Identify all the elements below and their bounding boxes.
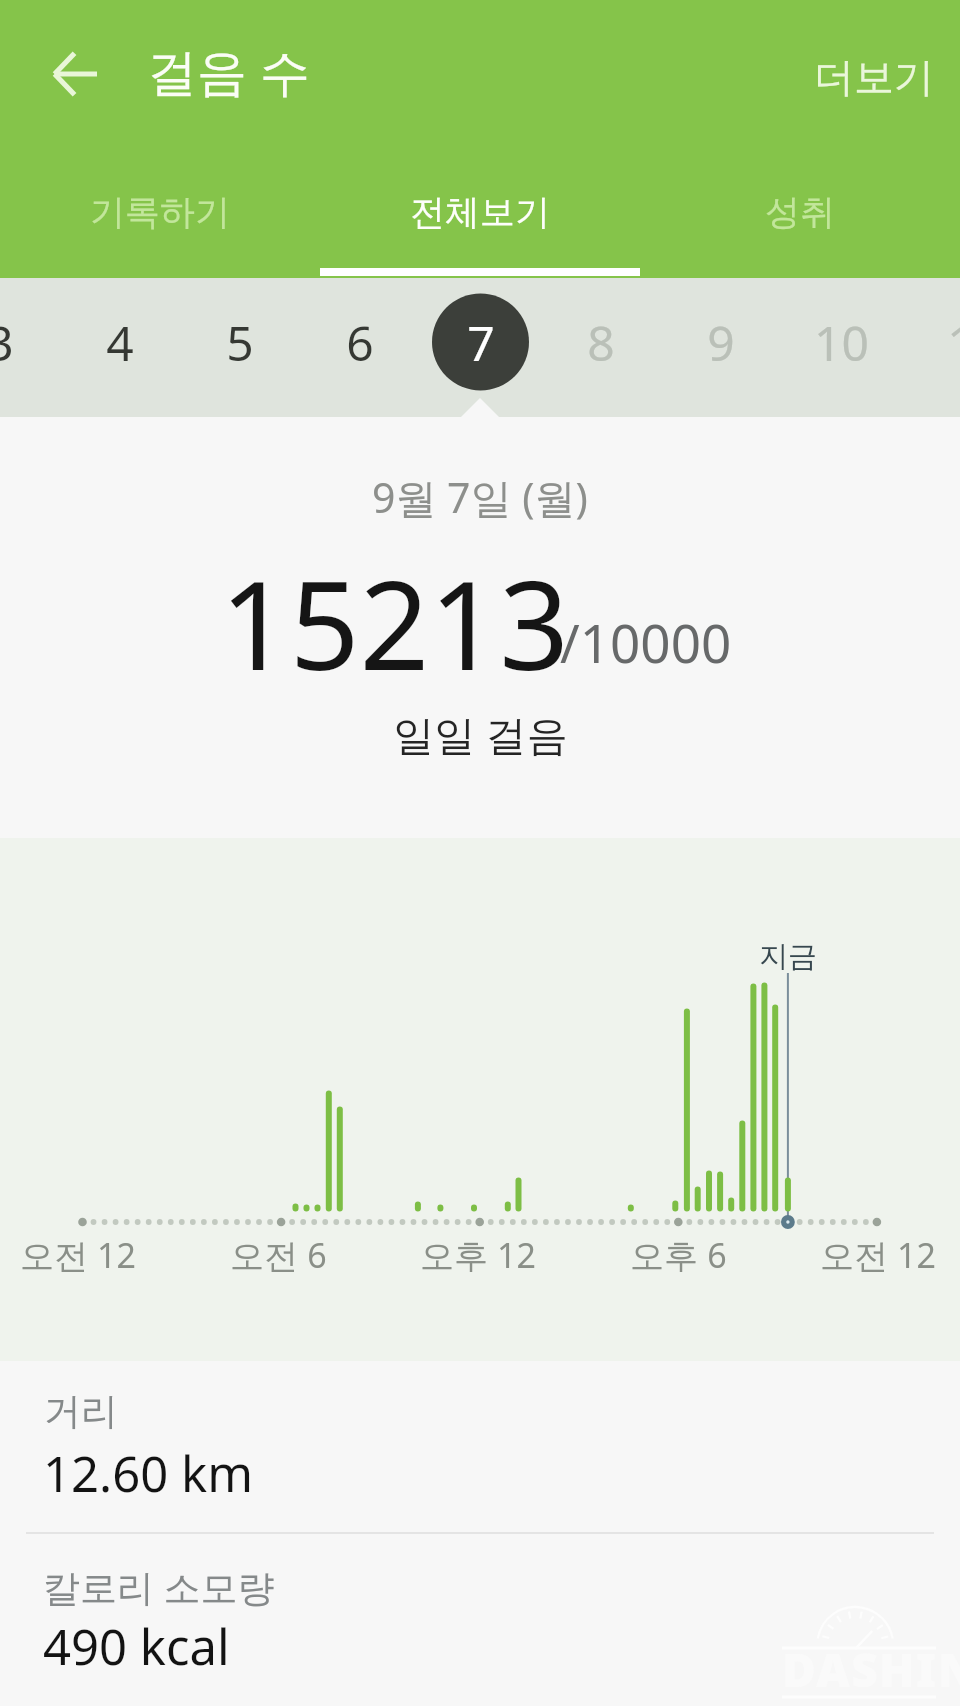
staticText: 일일 걸음	[393, 706, 568, 762]
staticText: 오후 6	[630, 1232, 727, 1278]
button[interactable]: 성취	[640, 190, 960, 234]
staticText: 더보기	[814, 52, 934, 102]
staticText: 기록하기	[90, 190, 230, 234]
staticText: 오전 6	[230, 1232, 327, 1278]
staticText: 걸음 수	[147, 37, 310, 105]
button[interactable]: 더보기	[784, 22, 960, 132]
staticText: /10000	[560, 606, 732, 678]
button[interactable]	[0, 1361, 960, 1532]
staticText: 지금	[759, 938, 817, 975]
staticText: 1	[947, 310, 960, 375]
staticText: 칼로리 소모량	[43, 1561, 275, 1612]
button[interactable]: Back	[23, 22, 127, 126]
staticText: 5	[226, 310, 254, 375]
button[interactable]	[0, 1532, 960, 1706]
button[interactable]: 3	[0, 278, 960, 417]
staticText: 전체보기	[410, 190, 550, 234]
button[interactable]: 기록하기	[0, 190, 320, 234]
staticText: 성취	[765, 190, 835, 234]
staticText: 3	[0, 310, 14, 375]
staticText: 8	[587, 310, 615, 375]
staticText: 490 kcal	[43, 1613, 230, 1680]
staticText: 15213	[220, 540, 569, 706]
staticText: 오전 12	[20, 1232, 136, 1278]
staticText: 9	[707, 310, 735, 375]
staticText: 오전 12	[820, 1232, 936, 1278]
staticText: 12.60 km	[43, 1440, 253, 1507]
staticText: 6	[346, 310, 374, 375]
staticText: 10	[814, 310, 869, 375]
staticText: 7	[467, 310, 495, 375]
staticText: 4	[106, 310, 134, 375]
staticText: 9월 7일 (월)	[372, 469, 588, 525]
staticText: 거리	[44, 1388, 118, 1435]
button[interactable]: 전체보기	[320, 190, 640, 234]
staticText: 오후 12	[420, 1232, 536, 1278]
